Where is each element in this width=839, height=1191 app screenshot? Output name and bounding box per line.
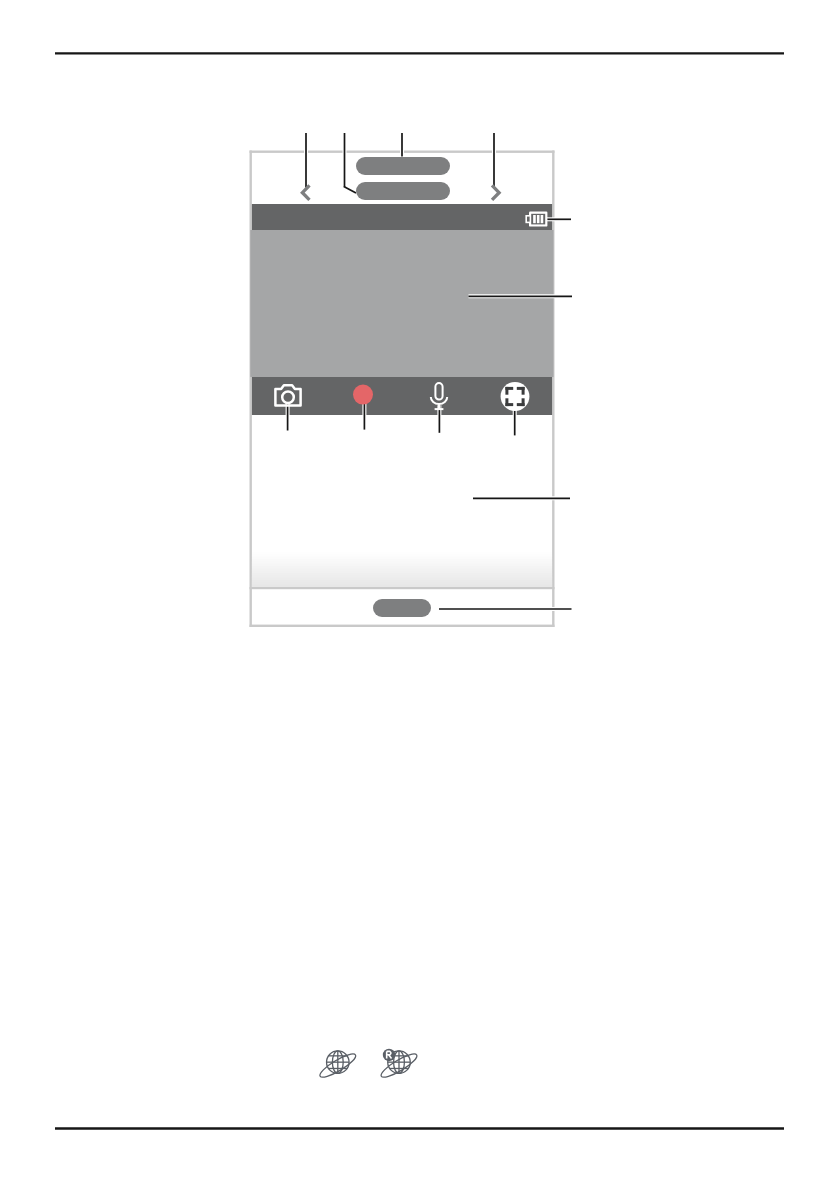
button[interactable]: Record video: [345, 377, 381, 415]
button[interactable]: Previous: [296, 181, 316, 207]
button[interactable]: Subtitle: [356, 182, 450, 200]
button[interactable]: Title: [356, 157, 450, 175]
button[interactable]: Microphone: [421, 377, 457, 415]
button[interactable]: Next: [487, 181, 507, 207]
button[interactable]: Take photo: [270, 377, 306, 415]
button[interactable]: Full screen: [497, 377, 533, 415]
button[interactable]: Action: [373, 599, 431, 617]
button[interactable]: Battery status: [523, 208, 551, 230]
